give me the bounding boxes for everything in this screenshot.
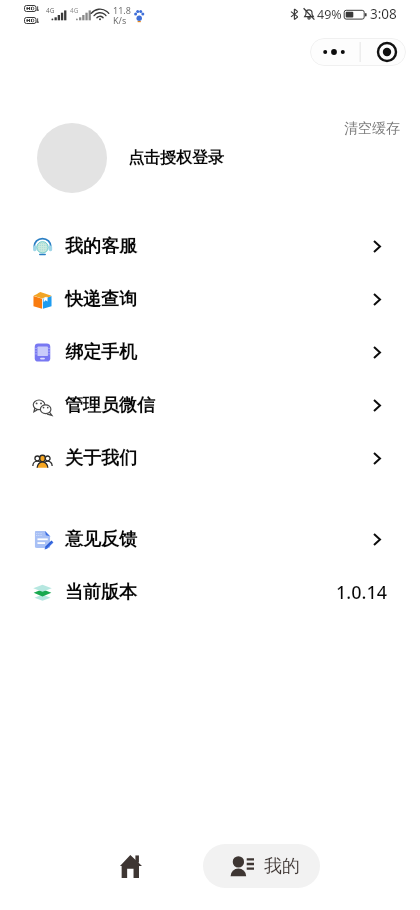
button[interactable]: 点击授权登录 [37,123,287,193]
staticText: K/s [113,14,127,26]
button[interactable]: 关于我们 [0,432,420,485]
staticText: 点击授权登录 [128,148,224,168]
staticText: 3:08 [370,5,397,23]
button[interactable]: Home [107,842,155,890]
staticText: 我的 [264,855,300,878]
button[interactable]: 绑定手机 [0,326,420,379]
staticText: 11.8 [113,4,131,16]
button[interactable]: 快递查询 [0,273,420,326]
button[interactable]: 意见反馈 [0,513,420,566]
button[interactable]: 当前版本 [0,566,420,619]
button[interactable]: 我的客服 [0,220,420,273]
staticText: 49% [317,6,342,23]
staticText: 意见反馈 [65,528,137,551]
staticText: 关于我们 [65,447,137,470]
staticText: 清空缓存 [344,120,400,138]
staticText: 当前版本 [65,581,137,604]
staticText: 1.0.14 [336,580,387,605]
staticText: 快递查询 [65,288,137,311]
staticText: 4G [46,6,55,15]
staticText: 管理员微信 [65,394,155,417]
button[interactable]: 清空缓存 [300,115,400,143]
staticText: 绑定手机 [65,341,137,364]
button[interactable]: 管理员微信 [0,379,420,432]
button[interactable]: Mini program menu [310,38,406,66]
button[interactable]: 我的 [203,844,320,888]
staticText: 4G [70,6,79,15]
staticText: 我的客服 [65,235,137,258]
